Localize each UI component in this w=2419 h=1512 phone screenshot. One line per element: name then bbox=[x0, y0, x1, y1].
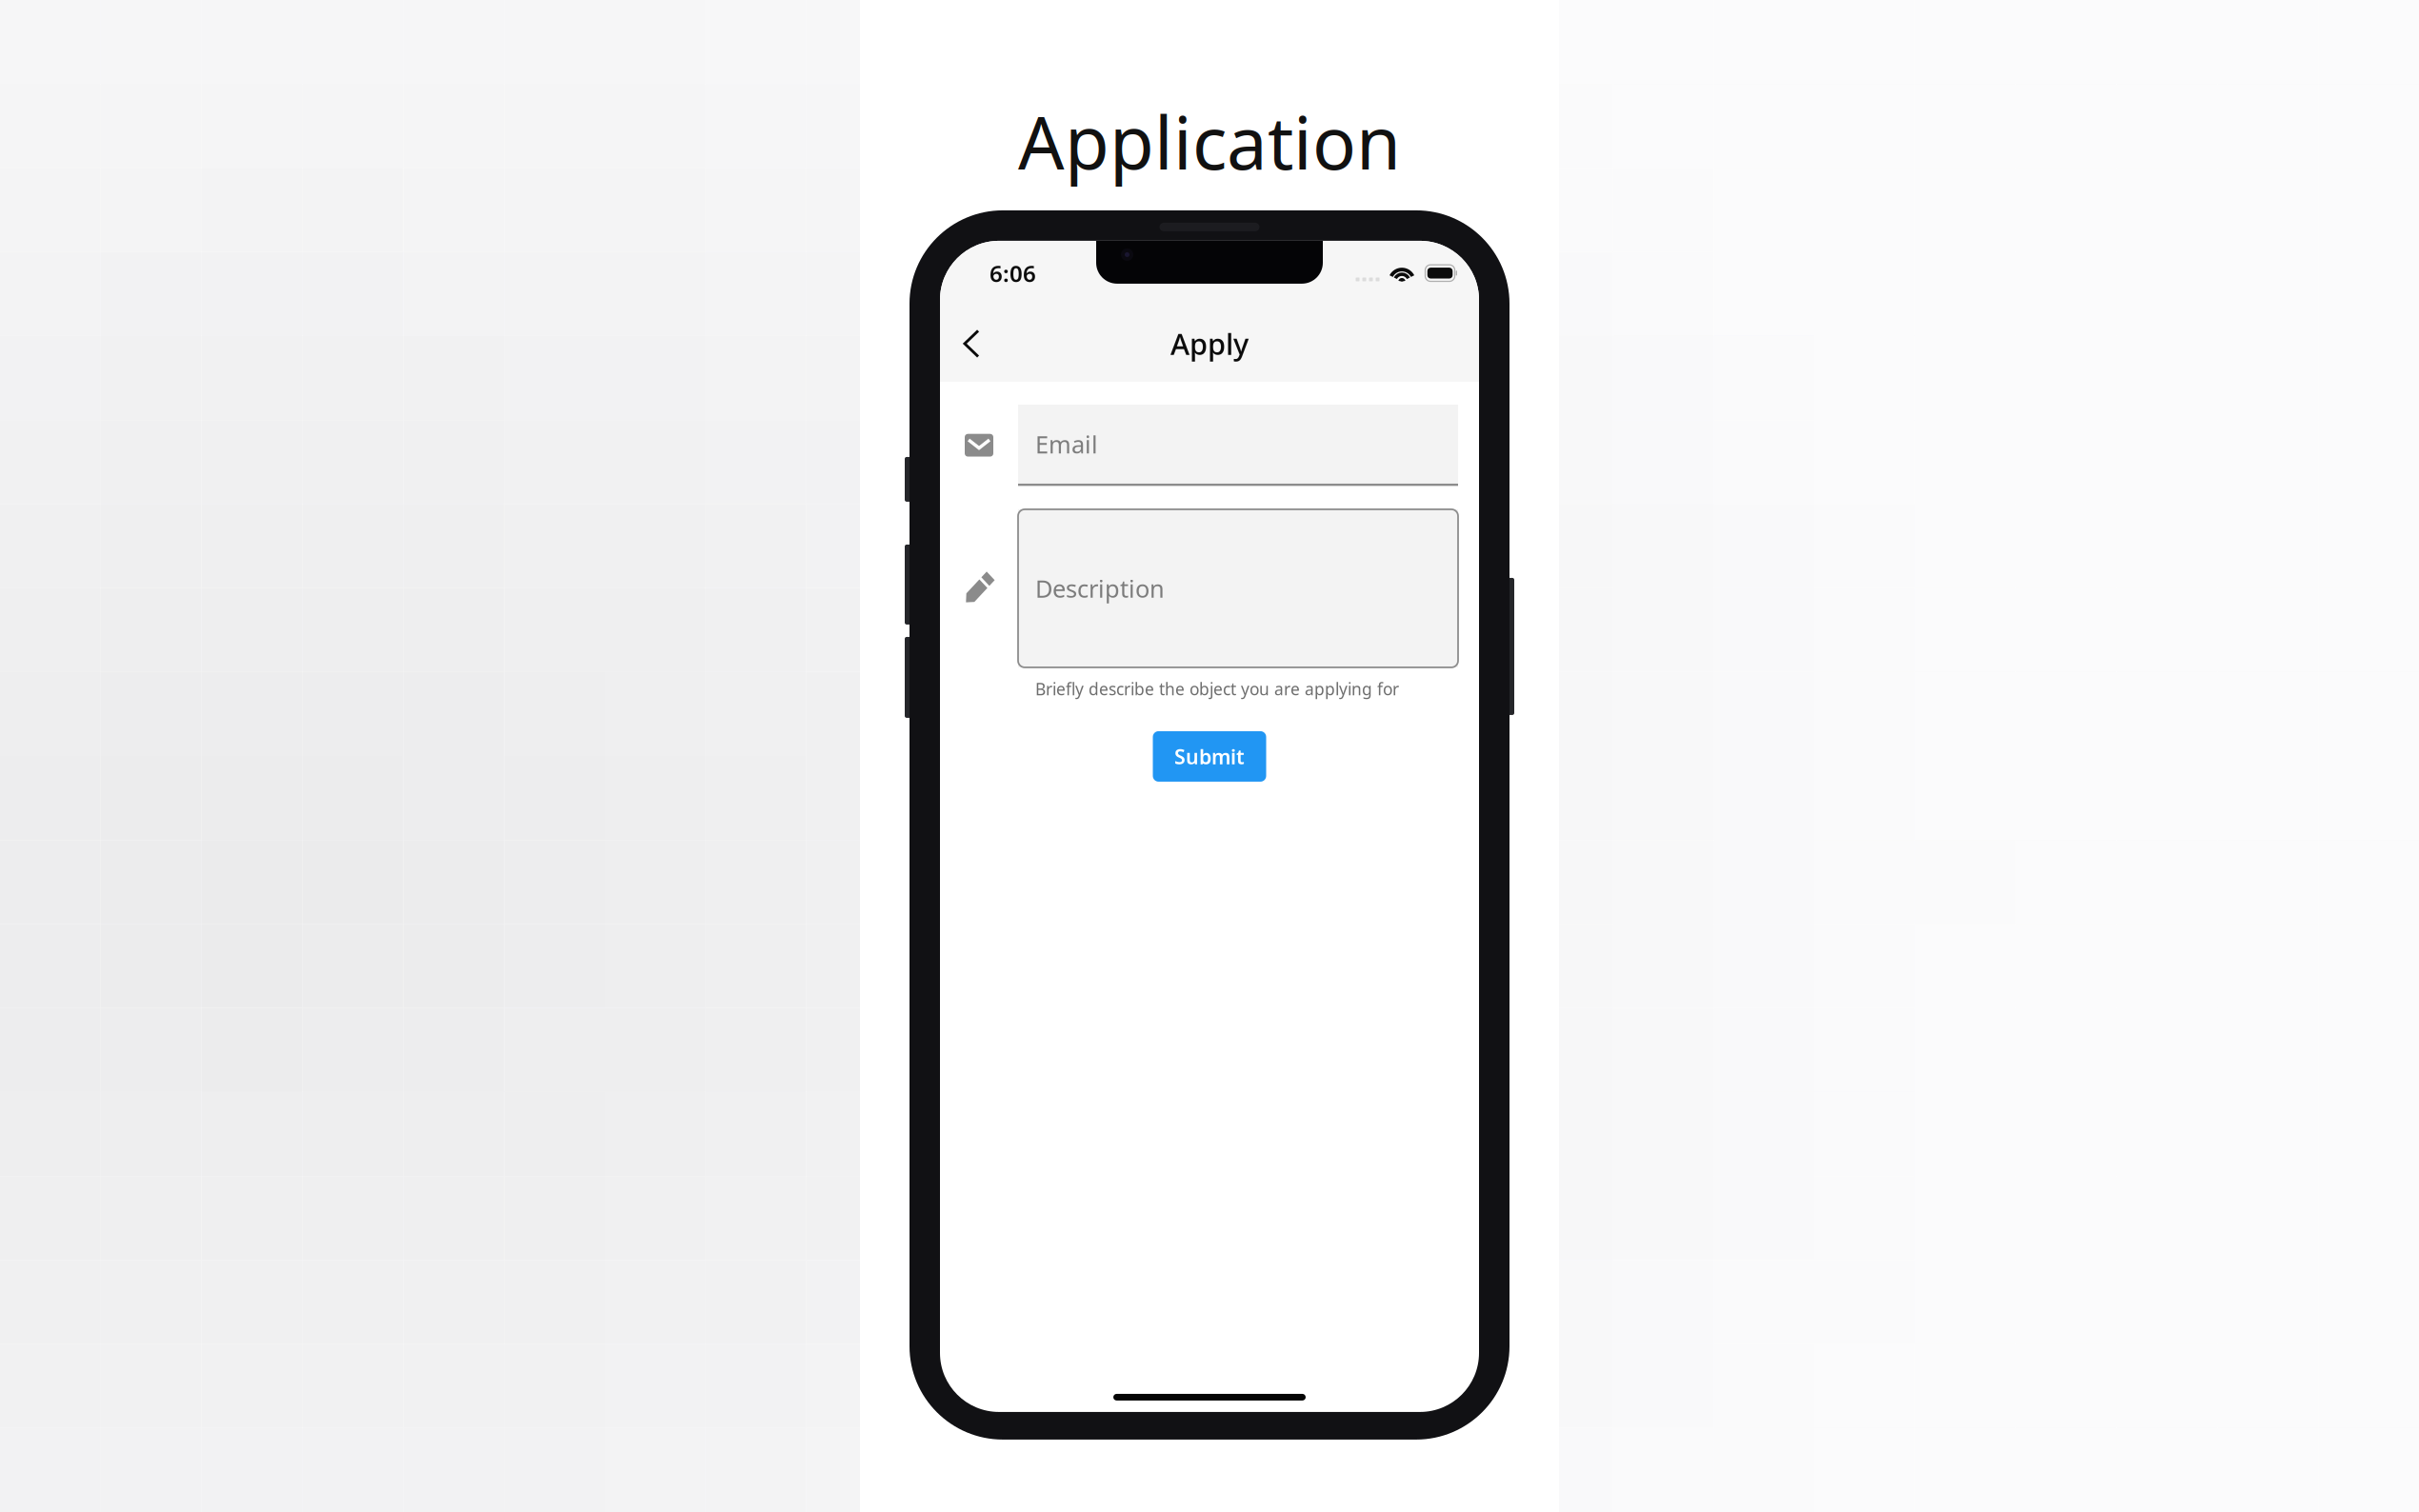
staticText: 6:06 bbox=[990, 258, 1036, 288]
staticText: Submit bbox=[1174, 743, 1245, 770]
button[interactable]: Back bbox=[940, 306, 1003, 382]
staticText: Email bbox=[1035, 428, 1098, 460]
button[interactable]: Submit bbox=[1153, 731, 1266, 782]
staticText: Description bbox=[1035, 572, 1165, 604]
staticText: Apply bbox=[1170, 324, 1249, 363]
staticText: Briefly describe the object you are appl… bbox=[1035, 678, 1399, 700]
staticText: Application bbox=[1018, 93, 1401, 189]
